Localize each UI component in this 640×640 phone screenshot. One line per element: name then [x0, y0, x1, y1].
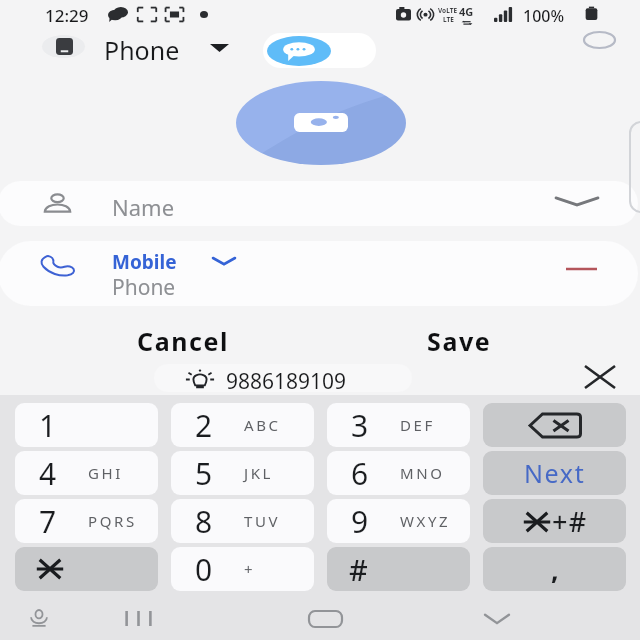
button[interactable]: Cancel: [61, 320, 306, 354]
button[interactable]: 4: [15, 451, 158, 495]
staticText: Cancel: [137, 324, 230, 358]
staticText: ,: [551, 551, 559, 588]
button[interactable]: 7: [15, 499, 158, 543]
staticText: LTE: [443, 15, 454, 24]
staticText: Phone: [104, 33, 180, 67]
button[interactable]: Add photo: [236, 81, 406, 165]
staticText: VoLTE: [438, 6, 458, 15]
button[interactable]: #: [327, 547, 470, 591]
staticText: Mobile: [112, 249, 177, 275]
staticText: Save: [427, 324, 492, 358]
staticText: GHI: [88, 463, 123, 483]
button[interactable]: 5: [171, 451, 314, 495]
button[interactable]: 3: [327, 403, 470, 447]
staticText: 9886189109: [226, 367, 347, 392]
button[interactable]: 9: [327, 499, 470, 543]
button[interactable]: Home: [280, 596, 390, 640]
staticText: 7: [39, 501, 57, 542]
staticText: 2: [195, 405, 213, 446]
staticText: 4G: [459, 4, 474, 19]
button[interactable]: Close suggestion: [585, 366, 615, 388]
staticText: 12:29: [45, 4, 89, 27]
staticText: +: [244, 559, 256, 579]
staticText: Next: [524, 456, 586, 490]
button[interactable]: Save: [337, 320, 582, 354]
button[interactable]: 2: [171, 403, 314, 447]
staticText: +#: [552, 503, 588, 540]
button[interactable]: Voice input: [0, 596, 96, 640]
button[interactable]: Recents: [100, 596, 210, 640]
staticText: JKL: [244, 463, 274, 483]
staticText: 1: [39, 405, 57, 446]
button[interactable]: Delete: [483, 403, 626, 447]
button[interactable]: 6: [327, 451, 470, 495]
button[interactable]: [15, 547, 158, 591]
staticText: 4: [39, 453, 57, 494]
staticText: 5: [195, 453, 213, 494]
staticText: PQRS: [88, 511, 137, 531]
button[interactable]: Phone: [42, 30, 237, 70]
button[interactable]: Expand name: [556, 195, 598, 211]
button[interactable]: 1: [15, 403, 158, 447]
staticText: Phone: [112, 273, 176, 302]
staticText: 6: [351, 453, 369, 494]
staticText: 3: [351, 405, 369, 446]
staticText: DEF: [400, 415, 435, 435]
staticText: 8: [195, 501, 213, 542]
button[interactable]: Mobile: [0, 241, 638, 306]
button[interactable]: Messages toggle: [263, 33, 376, 68]
staticText: MNO: [400, 463, 445, 483]
button[interactable]: Next: [483, 451, 626, 495]
staticText: 100%: [523, 5, 565, 27]
staticText: #: [349, 550, 368, 589]
other: Delete: [529, 413, 581, 438]
staticText: WXYZ: [400, 511, 451, 531]
button[interactable]: Remove phone number: [556, 257, 606, 283]
button[interactable]: Account: [584, 32, 615, 48]
button[interactable]: Hide keyboard: [450, 596, 560, 640]
staticText: 0: [195, 549, 213, 590]
button[interactable]: 9886189109: [154, 364, 412, 392]
button[interactable]: +#: [483, 499, 626, 543]
button[interactable]: Name: [0, 181, 638, 226]
button[interactable]: 8: [171, 499, 314, 543]
staticText: 9: [351, 501, 369, 542]
button[interactable]: 0: [171, 547, 314, 591]
staticText: TUV: [244, 511, 281, 531]
staticText: ABC: [244, 415, 281, 435]
button[interactable]: ,: [483, 547, 626, 591]
staticText: Name: [112, 192, 175, 222]
